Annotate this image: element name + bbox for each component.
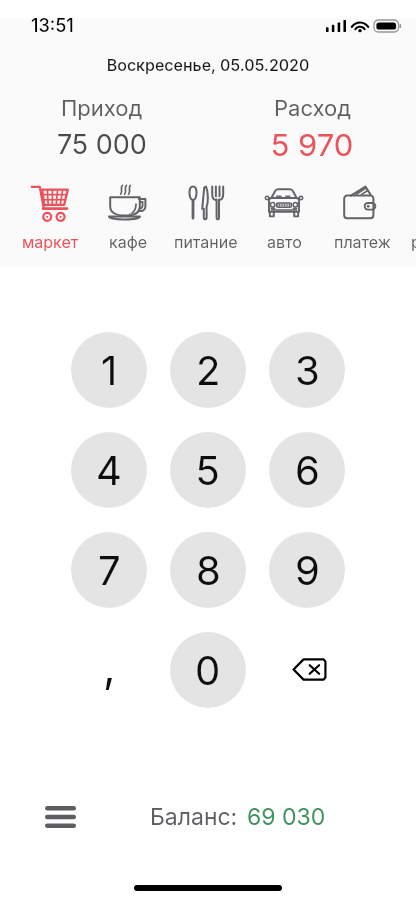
staticText: 75 000 [57,128,147,161]
button[interactable]: 1 [71,332,147,408]
button[interactable]: 6 [269,432,345,508]
button[interactable]: Баланс: [150,803,326,831]
staticText: 13:51 [31,15,74,37]
button[interactable]: авто [245,180,323,258]
staticText: 5 [196,446,220,494]
staticText: 69 030 [247,803,326,831]
staticText: 0 [195,646,221,694]
button[interactable]: Menu [38,795,82,839]
staticText: Расход [274,95,351,122]
button[interactable]: платеж [323,180,401,258]
staticText: Баланс: [150,803,238,831]
button[interactable]: 7 [71,532,147,608]
staticText: 8 [196,546,221,594]
button[interactable]: кафе [89,180,167,258]
staticText: питание [174,232,238,251]
staticText: 3 [295,346,320,394]
staticText: , [103,639,116,692]
staticText: 2 [196,346,221,394]
staticText: 7 [98,546,121,594]
button[interactable]: 0 [170,632,246,708]
button[interactable]: 2 [170,332,246,408]
staticText: 5 970 [271,126,354,164]
button[interactable]: 5 [170,432,246,508]
staticText: 1 [101,346,118,394]
button[interactable]: раз [411,232,416,251]
staticText: платеж [334,232,391,251]
button[interactable]: 9 [269,532,345,608]
button[interactable]: Backspace [269,632,345,708]
staticText: Приход [61,95,143,122]
button[interactable]: 4 [71,432,147,508]
button[interactable]: питание [167,180,245,258]
staticText: 6 [295,446,320,494]
staticText: кафе [109,232,147,251]
staticText: 9 [295,546,320,594]
button[interactable]: , [71,632,147,708]
staticText: авто [267,232,302,251]
staticText: Воскресенье, 05.05.2020 [0,55,416,74]
button[interactable]: 3 [269,332,345,408]
staticText: 4 [96,446,122,494]
button[interactable]: маркет [11,180,89,258]
button[interactable]: 8 [170,532,246,608]
staticText: маркет [22,232,79,251]
